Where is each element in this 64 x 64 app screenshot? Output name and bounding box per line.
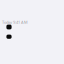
staticText: Today 9:41 AM (2, 19, 28, 25)
